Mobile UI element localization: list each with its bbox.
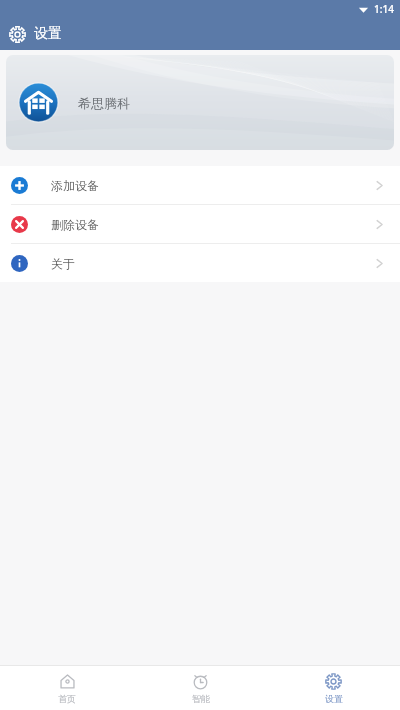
staticText: 希思腾科 — [78, 95, 130, 111]
staticText: 智能 — [192, 693, 210, 704]
staticText: 首页 — [58, 693, 76, 704]
button[interactable]: 添加设备 — [0, 166, 400, 204]
staticText: 添加设备 — [51, 178, 99, 193]
other: Settings — [9, 26, 26, 43]
button[interactable]: 关于 — [0, 244, 400, 282]
staticText: 关于 — [51, 256, 75, 271]
staticText: 设置 — [34, 25, 62, 43]
staticText: 删除设备 — [51, 217, 99, 232]
button[interactable]: 智能 — [134, 666, 267, 710]
button[interactable]: 设置 — [267, 666, 400, 710]
staticText: 1:14 — [374, 2, 394, 16]
staticText: 设置 — [325, 693, 343, 704]
button[interactable]: 希思腾科 — [6, 55, 394, 150]
button[interactable]: 删除设备 — [0, 205, 400, 243]
button[interactable]: 首页 — [0, 666, 134, 710]
